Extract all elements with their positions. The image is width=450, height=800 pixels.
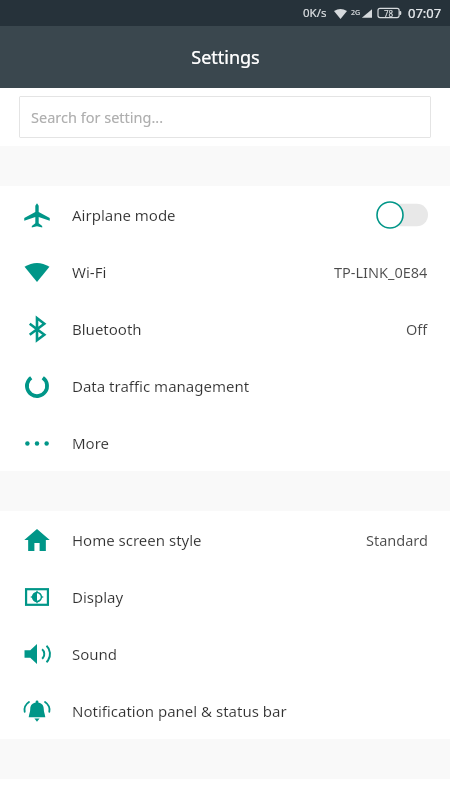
- staticText: Airplane mode: [72, 205, 176, 225]
- button[interactable]: Display: [0, 568, 450, 625]
- staticText: Notification panel & status bar: [72, 701, 287, 721]
- staticText: Sound: [72, 644, 118, 664]
- button[interactable]: Sound: [0, 625, 450, 682]
- staticText: Home screen style: [72, 530, 202, 550]
- staticText: 78: [384, 8, 394, 19]
- staticText: Wi-Fi: [72, 262, 107, 282]
- button[interactable]: Data traffic management: [0, 357, 450, 414]
- staticText: TP-LINK_0E84: [334, 262, 428, 282]
- button[interactable]: Airplane mode: [0, 186, 450, 243]
- staticText: Settings: [191, 45, 260, 70]
- button[interactable]: More: [0, 414, 450, 471]
- staticText: 07:07: [408, 4, 442, 22]
- staticText: Search for setting...: [31, 107, 164, 127]
- staticText: Data traffic management: [72, 376, 250, 396]
- staticText: Display: [72, 587, 124, 607]
- staticText: More: [72, 433, 110, 453]
- button[interactable]: Home screen style: [0, 511, 450, 568]
- button[interactable]: Airplane mode toggle: [376, 201, 428, 229]
- button[interactable]: Search for setting...: [19, 96, 431, 138]
- button[interactable]: Wi-Fi: [0, 243, 450, 300]
- button[interactable]: Notification panel & status bar: [0, 682, 450, 739]
- staticText: Off: [406, 319, 428, 339]
- staticText: 2G: [351, 8, 361, 18]
- staticText: 0K/s: [303, 5, 327, 21]
- staticText: Bluetooth: [72, 319, 142, 339]
- staticText: Standard: [366, 530, 428, 550]
- button[interactable]: Bluetooth: [0, 300, 450, 357]
